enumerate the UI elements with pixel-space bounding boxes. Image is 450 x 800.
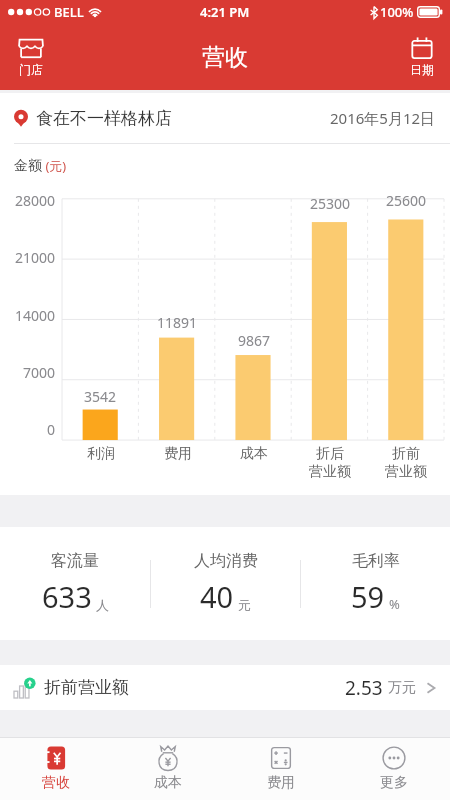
staticText: 客流量: [51, 551, 99, 571]
staticText: 营收: [202, 43, 248, 72]
staticText: 营收: [42, 774, 70, 792]
staticText: 金额: [14, 157, 42, 175]
button[interactable]: 营收: [0, 737, 112, 800]
staticText: 0: [47, 420, 56, 439]
staticText: 成本: [240, 445, 268, 463]
button[interactable]: 食在不一样格林店: [0, 93, 450, 143]
staticText: 9867: [238, 331, 271, 350]
staticText: 更多: [380, 774, 408, 792]
staticText: 633: [42, 577, 92, 616]
staticText: 28000: [15, 191, 56, 210]
staticText: BELL: [54, 3, 84, 21]
staticText: 万元: [388, 679, 416, 697]
staticText: 毛利率: [352, 551, 400, 571]
staticText: 营业额: [309, 463, 351, 481]
staticText: 食在不一样格林店: [36, 108, 172, 129]
staticText: 门店: [19, 62, 43, 77]
staticText: 人: [96, 597, 109, 613]
staticText: (元): [42, 157, 67, 175]
staticText: 21000: [15, 248, 56, 267]
button[interactable]: 更多: [337, 737, 450, 800]
staticText: 25300: [310, 194, 351, 213]
staticText: 折后: [316, 445, 344, 463]
staticText: 成本: [154, 774, 182, 792]
staticText: 人均消费: [194, 551, 258, 571]
staticText: 折前: [392, 445, 420, 463]
staticText: 2.53: [345, 675, 383, 701]
button[interactable]: 客流量: [0, 551, 150, 616]
staticText: 14000: [15, 306, 56, 325]
staticText: 100%: [380, 3, 414, 21]
staticText: 元: [238, 597, 251, 613]
staticText: 费用: [267, 774, 295, 792]
button[interactable]: 折前营业额: [0, 665, 450, 710]
button[interactable]: 人均消费: [151, 551, 300, 616]
staticText: 利润: [87, 445, 115, 463]
staticText: 25600: [386, 191, 427, 210]
staticText: 营业额: [385, 463, 427, 481]
staticText: 40: [200, 577, 234, 616]
staticText: 59: [351, 577, 385, 616]
staticText: 日期: [410, 62, 434, 77]
button[interactable]: 日期: [394, 24, 450, 90]
staticText: 折前营业额: [44, 677, 129, 698]
staticText: 4:21 PM: [200, 3, 250, 21]
staticText: 11891: [157, 313, 198, 332]
staticText: %: [389, 595, 400, 613]
staticText: 2016年5月12日: [330, 108, 436, 128]
button[interactable]: 成本: [112, 737, 224, 800]
button[interactable]: 门店: [0, 24, 62, 90]
button[interactable]: 费用: [224, 737, 337, 800]
staticText: 3542: [84, 387, 117, 406]
staticText: 7000: [23, 363, 56, 382]
staticText: 费用: [164, 445, 192, 463]
button[interactable]: 毛利率: [301, 551, 450, 616]
